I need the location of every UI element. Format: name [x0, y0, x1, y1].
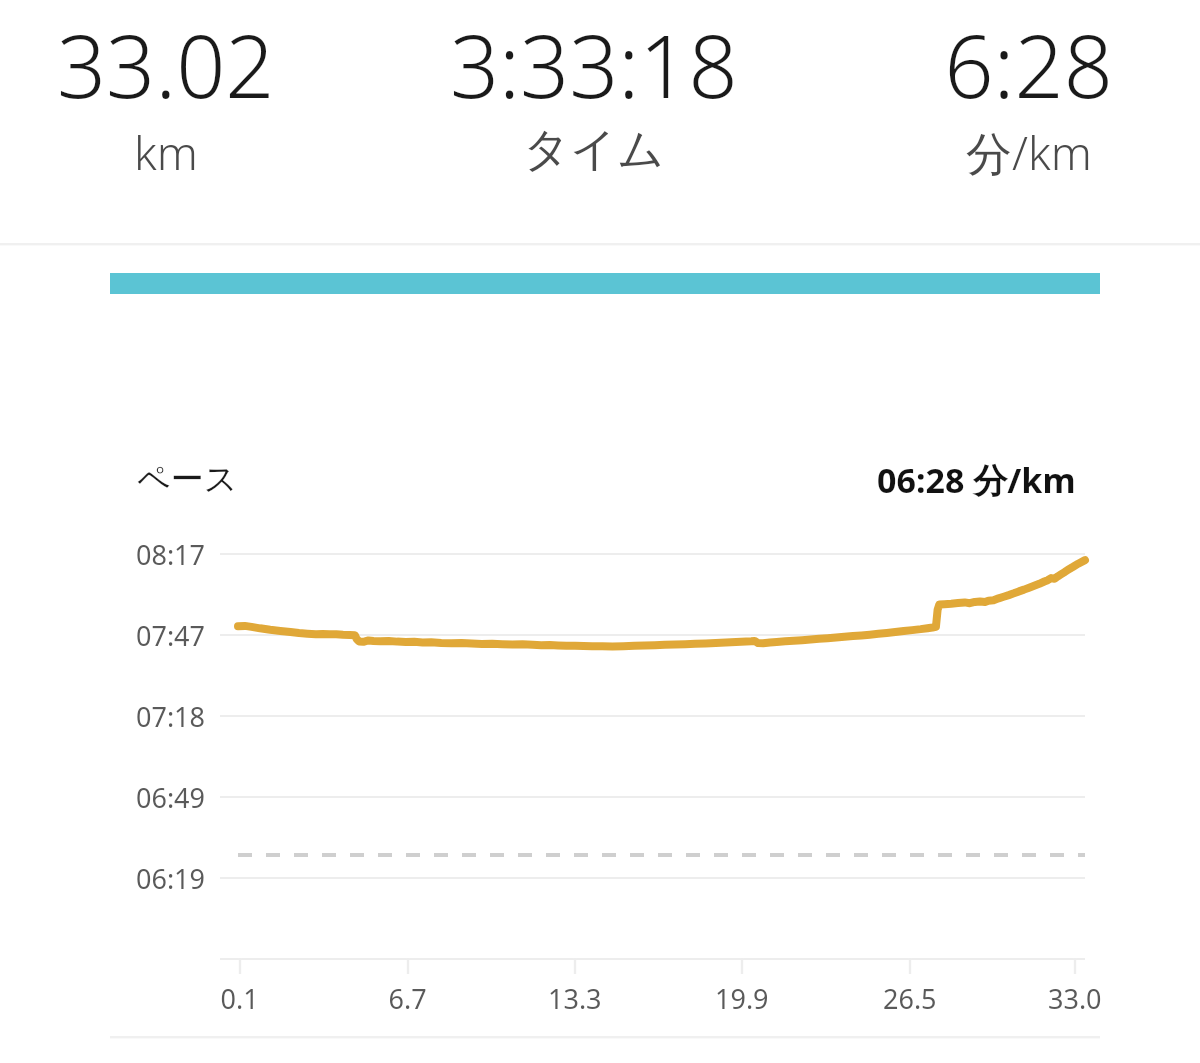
button[interactable] [0, 0, 1200, 1063]
other: Run summary with pace chart [0, 0, 1200, 1063]
